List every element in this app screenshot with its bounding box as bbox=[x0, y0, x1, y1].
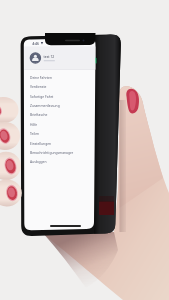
button[interactable]: Hand holding phone showing app menu bbox=[0, 0, 169, 300]
